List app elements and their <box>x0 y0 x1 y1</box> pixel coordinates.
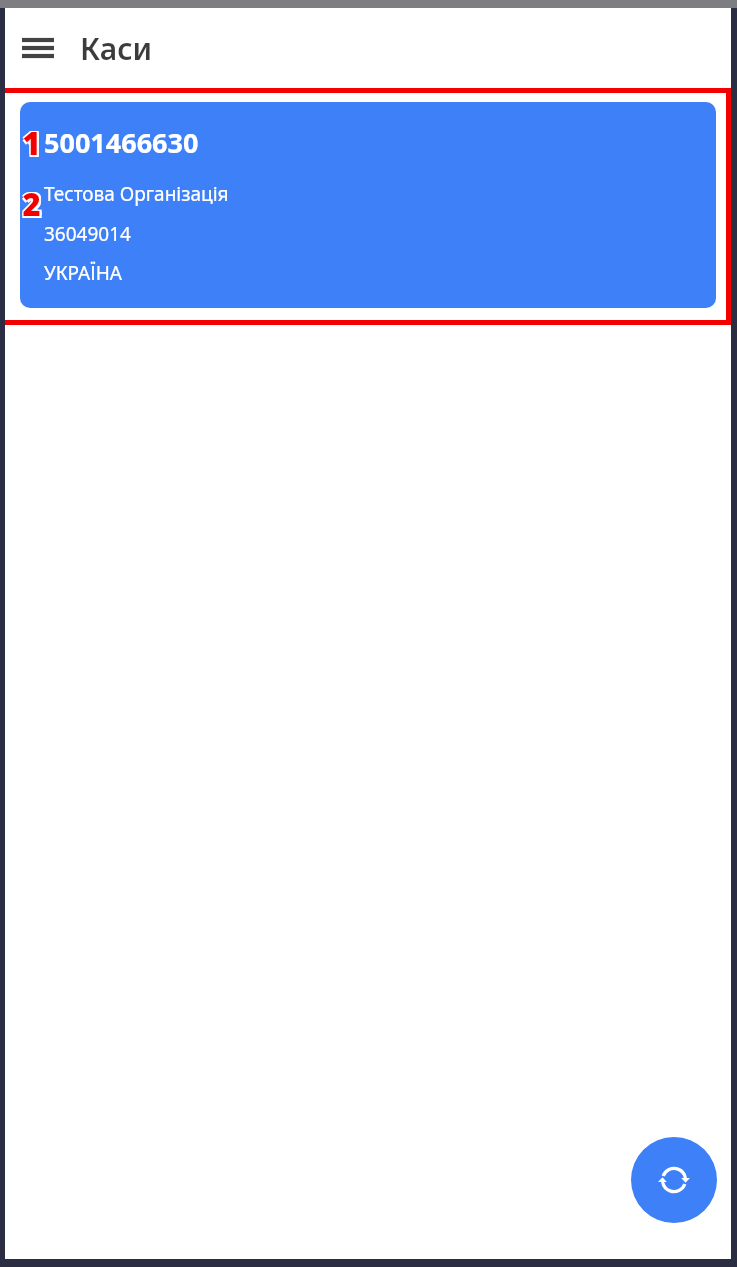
staticText: Тестова Організація <box>44 181 229 207</box>
staticText: 2 <box>21 185 40 221</box>
button[interactable]: 5001466630 <box>20 102 716 308</box>
staticText: 1 <box>22 122 41 158</box>
staticText: 1 <box>24 121 43 157</box>
button[interactable]: Sync <box>631 1137 717 1223</box>
button[interactable]: Open navigation menu <box>14 24 62 72</box>
staticText: 2 <box>22 183 41 219</box>
staticText: 2 <box>24 182 43 218</box>
staticText: 1 <box>21 124 40 160</box>
staticText: 5001466630 <box>44 124 199 161</box>
staticText: УКРАЇНА <box>44 260 122 286</box>
staticText: 1 <box>21 121 40 157</box>
staticText: 2 <box>21 182 40 218</box>
staticText: 2 <box>24 185 43 221</box>
staticText: Каси <box>80 28 153 69</box>
staticText: 1 <box>24 124 43 160</box>
staticText: 36049014 <box>44 221 131 247</box>
